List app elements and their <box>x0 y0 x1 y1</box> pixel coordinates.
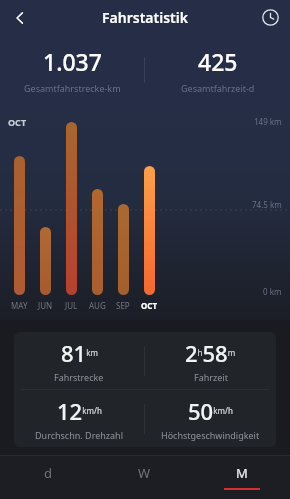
button[interactable] <box>136 122 162 295</box>
staticText: Durchschn. Drehzahl <box>35 429 123 441</box>
staticText: 81km <box>61 338 98 368</box>
staticText: Gesamtfahrstrecke-km <box>24 82 121 94</box>
button[interactable] <box>32 122 58 295</box>
button[interactable]: Back <box>0 0 40 35</box>
staticText: 0 km <box>263 286 282 297</box>
staticText: AUG <box>89 300 106 311</box>
staticText: M <box>236 464 248 482</box>
staticText: JUL <box>65 300 78 311</box>
staticText: Höchstgeschwindigkeit <box>161 429 260 441</box>
staticText: 2h58m <box>185 338 236 368</box>
staticText: OCT <box>141 300 158 311</box>
staticText: 149 km <box>254 116 282 127</box>
button[interactable]: History <box>250 0 290 35</box>
button[interactable]: 2h58m <box>145 332 276 389</box>
button[interactable] <box>58 122 84 295</box>
staticText: 74.5 km <box>252 199 282 210</box>
button[interactable]: M <box>193 455 290 499</box>
staticText: 1.037 <box>43 46 102 77</box>
button[interactable] <box>84 122 110 295</box>
staticText: SEP <box>116 300 130 311</box>
staticText: JUN <box>38 300 53 311</box>
staticText: Fahrstatistik <box>102 8 188 27</box>
staticText: d <box>44 464 52 482</box>
button[interactable] <box>110 122 136 295</box>
button[interactable]: 81km <box>14 332 144 389</box>
staticText: 425 <box>198 46 238 77</box>
staticText: Fahrstrecke <box>54 371 104 383</box>
staticText: Fahrzeit <box>194 371 228 383</box>
button[interactable]: d <box>0 455 96 499</box>
staticText: OCT <box>8 116 27 128</box>
staticText: MAY <box>11 300 28 311</box>
button[interactable]: 50km/h <box>145 390 276 447</box>
staticText: 12km/h <box>57 396 102 426</box>
staticText: 50km/h <box>188 396 233 426</box>
button[interactable]: W <box>96 455 193 499</box>
button[interactable]: 12km/h <box>14 390 144 447</box>
button[interactable] <box>6 122 32 295</box>
staticText: Gesamtfahrzeit-d <box>181 82 255 94</box>
staticText: W <box>138 464 151 482</box>
